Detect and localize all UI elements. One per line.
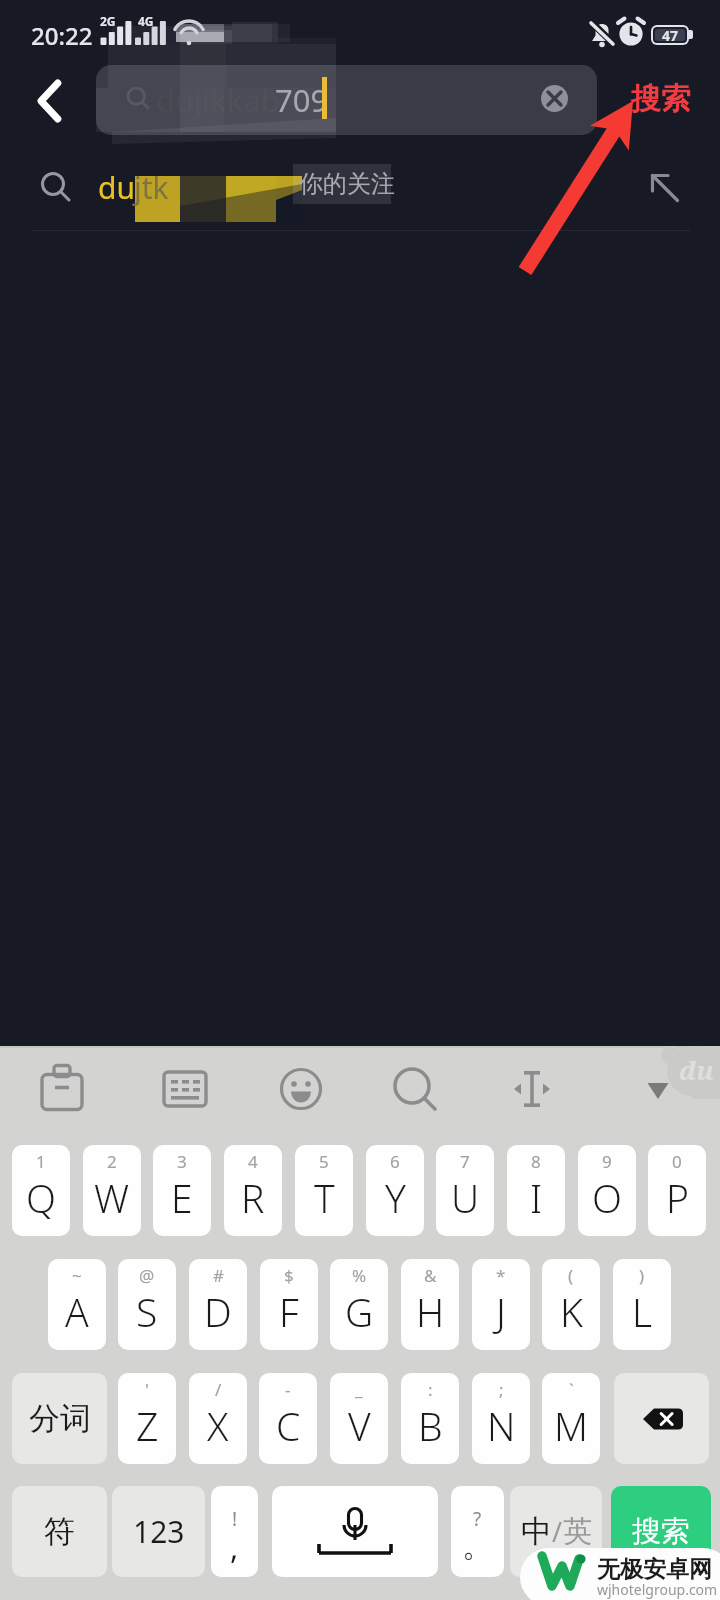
staticText: 中	[521, 1512, 552, 1551]
button[interactable]: Backspace	[614, 1373, 709, 1464]
button[interactable]: 中	[510, 1486, 602, 1577]
staticText: I	[530, 1171, 543, 1224]
button[interactable]: 7	[436, 1145, 494, 1236]
button[interactable]: ~	[48, 1259, 106, 1350]
button[interactable]: @	[118, 1259, 176, 1350]
staticText: 20:22	[31, 19, 93, 52]
button[interactable]: %	[330, 1259, 388, 1350]
staticText: 英	[563, 1513, 592, 1550]
staticText: G	[345, 1285, 374, 1338]
staticText: du	[679, 1052, 714, 1087]
button[interactable]: Use this suggestion	[636, 158, 694, 216]
staticText: /	[215, 1378, 222, 1401]
staticText: O	[592, 1171, 622, 1224]
staticText: '	[145, 1378, 149, 1401]
staticText: du	[98, 167, 135, 208]
button[interactable]: 6	[366, 1145, 424, 1236]
staticText: `	[569, 1378, 574, 1401]
staticText: Q	[26, 1171, 56, 1224]
button[interactable]: 5	[295, 1145, 353, 1236]
button[interactable]: dujikkab	[96, 65, 597, 135]
button[interactable]: du	[0, 142, 720, 230]
button[interactable]: 0	[648, 1145, 706, 1236]
button[interactable]: &	[401, 1259, 459, 1350]
staticText: ~	[72, 1264, 82, 1287]
staticText: 4	[248, 1150, 258, 1173]
button[interactable]: 3	[153, 1145, 211, 1236]
staticText: T	[314, 1171, 335, 1224]
staticText: M	[554, 1399, 589, 1452]
staticText: 2	[107, 1150, 117, 1173]
button[interactable]: 符	[12, 1486, 107, 1577]
button[interactable]: `	[542, 1373, 600, 1464]
staticText: J	[496, 1285, 506, 1338]
staticText: &	[424, 1264, 437, 1287]
staticText: P	[666, 1171, 689, 1224]
button[interactable]: *	[472, 1259, 530, 1350]
staticText: 2G	[100, 13, 116, 29]
button[interactable]: Toolbox	[28, 1050, 96, 1128]
button[interactable]: Emoji	[267, 1050, 335, 1128]
button[interactable]: 123	[112, 1486, 205, 1577]
staticText: H	[416, 1285, 445, 1338]
button[interactable]: Back	[6, 62, 94, 140]
button[interactable]: -	[259, 1373, 317, 1464]
button[interactable]: $	[260, 1259, 318, 1350]
staticText: %	[352, 1264, 367, 1287]
button[interactable]: /	[189, 1373, 247, 1464]
button[interactable]: 4	[224, 1145, 282, 1236]
staticText: E	[171, 1171, 193, 1224]
staticText: 47	[662, 26, 679, 42]
staticText: 709	[275, 79, 329, 121]
staticText: 你的关注	[299, 169, 395, 199]
staticText: F	[279, 1285, 299, 1338]
staticText: 符	[44, 1512, 75, 1551]
button[interactable]: ;	[472, 1373, 530, 1464]
button[interactable]: 搜索	[605, 62, 715, 140]
staticText: 3	[177, 1150, 187, 1173]
staticText: R	[241, 1171, 265, 1224]
button[interactable]: _	[330, 1373, 388, 1464]
staticText: ;	[499, 1378, 504, 1401]
staticText: 分词	[29, 1399, 91, 1438]
staticText: B	[418, 1399, 443, 1452]
button[interactable]: 1	[12, 1145, 70, 1236]
staticText: L	[632, 1285, 653, 1338]
staticText: #	[213, 1264, 224, 1287]
staticText: 无极安卓网	[597, 1555, 712, 1584]
staticText: 搜索	[632, 1513, 690, 1550]
staticText: 6	[390, 1150, 400, 1173]
staticText: X	[207, 1399, 229, 1452]
button[interactable]: 分词	[12, 1373, 107, 1464]
button[interactable]: (	[542, 1259, 600, 1350]
button[interactable]: Search	[381, 1050, 449, 1128]
button[interactable]: Clear search	[541, 85, 568, 112]
button[interactable]: 8	[507, 1145, 565, 1236]
staticText: 5	[319, 1150, 329, 1173]
staticText: 搜索	[631, 80, 691, 118]
staticText: 9	[602, 1150, 612, 1173]
staticText: dujikkab	[156, 79, 280, 121]
staticText: (	[568, 1264, 574, 1287]
staticText: Y	[385, 1171, 406, 1224]
button[interactable]: :	[401, 1373, 459, 1464]
button[interactable]: !	[211, 1486, 258, 1577]
staticText: K	[560, 1285, 583, 1338]
button[interactable]: Move cursor	[498, 1050, 566, 1128]
button[interactable]: 9	[578, 1145, 636, 1236]
button[interactable]: Keyboard layout	[151, 1050, 219, 1128]
staticText: W	[94, 1171, 130, 1224]
button[interactable]: 搜索	[611, 1486, 711, 1577]
button[interactable]: #	[189, 1259, 247, 1350]
button[interactable]: Space, hold for voice input	[272, 1486, 438, 1577]
staticText: _	[355, 1378, 363, 1401]
staticText: !	[232, 1506, 238, 1532]
button[interactable]: ?	[451, 1486, 504, 1577]
button[interactable]: )	[613, 1259, 671, 1350]
button[interactable]: 2	[83, 1145, 141, 1236]
button[interactable]: '	[118, 1373, 176, 1464]
staticText: V	[348, 1399, 371, 1452]
staticText: 0	[672, 1150, 682, 1173]
staticText: *	[496, 1264, 506, 1287]
button[interactable]: Hide keyboard	[623, 1060, 691, 1116]
